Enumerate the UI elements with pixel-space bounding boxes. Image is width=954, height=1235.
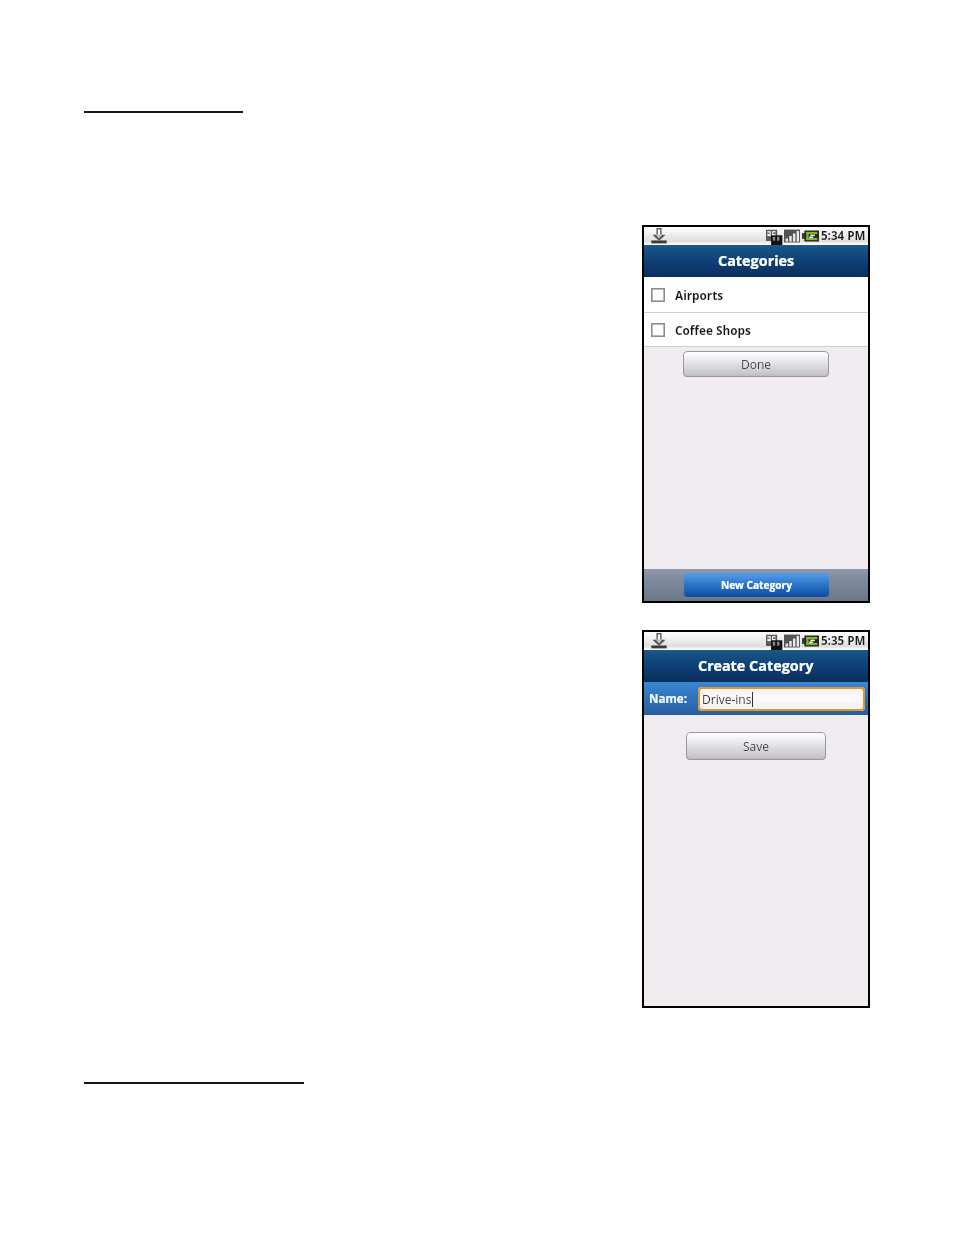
button[interactable]: Save <box>686 732 826 760</box>
staticText: Save <box>743 738 770 754</box>
button[interactable]: Airports <box>644 277 868 312</box>
staticText: Coffee Shops <box>675 322 751 338</box>
staticText: Done <box>741 356 772 372</box>
staticText: 5:35 PM <box>821 633 866 649</box>
staticText: New Category <box>721 578 793 592</box>
staticText: Drive-ins <box>702 691 752 707</box>
other: Download <box>651 228 667 244</box>
staticText: Airports <box>675 287 724 303</box>
staticText: 5:34 PM <box>821 228 866 244</box>
button[interactable]: Done <box>683 351 829 377</box>
button[interactable]: Drive-ins <box>698 687 865 711</box>
staticText: Create Category <box>698 656 814 676</box>
other: Download <box>651 633 667 649</box>
button[interactable]: Coffee Shops <box>644 313 868 346</box>
button[interactable]: New Category <box>684 573 829 597</box>
staticText: Categories <box>718 251 795 271</box>
staticText: Name: <box>649 691 687 707</box>
